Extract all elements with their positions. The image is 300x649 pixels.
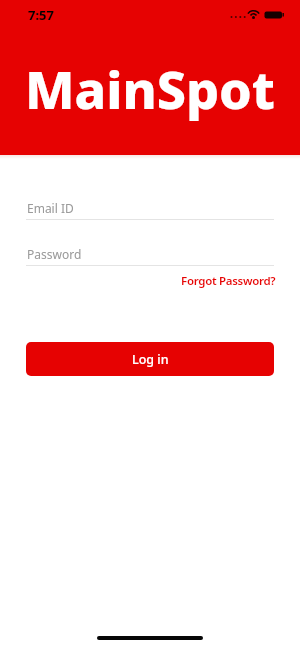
staticText: Log in [132,351,169,368]
button[interactable]: Log in [26,342,274,376]
staticText: Forgot Password? [181,273,276,289]
staticText: Password [27,246,82,262]
button[interactable]: Forgot Password? [181,273,276,289]
staticText: 7:57 [28,6,54,24]
staticText: MainSpot [0,53,300,124]
staticText: Email ID [27,200,74,216]
button[interactable]: Email ID [26,196,274,220]
button[interactable]: Password [26,242,274,266]
